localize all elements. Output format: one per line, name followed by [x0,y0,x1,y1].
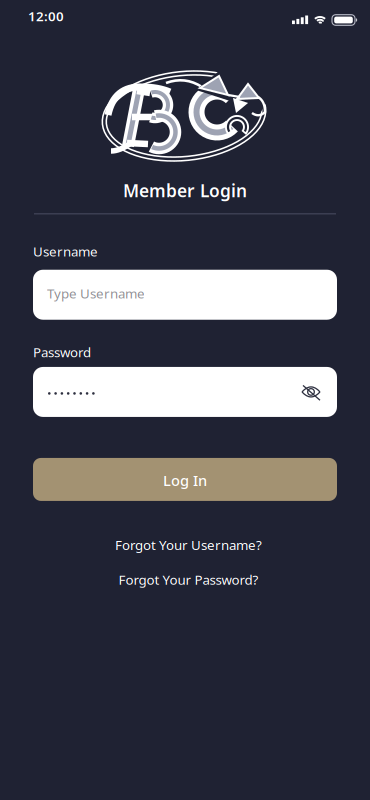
button[interactable]: Forgot Your Username? [108,536,262,554]
staticText: Password [33,343,91,361]
staticText: Member Login [123,179,247,202]
staticText: Type Username [47,284,145,302]
button[interactable] [33,367,337,417]
button[interactable]: Log In [33,458,337,501]
button[interactable]: Show password [301,384,337,399]
staticText: Forgot Your Password? [118,571,258,588]
staticText: Username [33,242,98,260]
button[interactable]: Forgot Your Password? [111,571,258,588]
button[interactable]: Type Username [33,270,337,320]
staticText: Forgot Your Username? [115,536,262,554]
staticText: 12:00 [28,7,64,25]
staticText: Log In [163,471,207,490]
